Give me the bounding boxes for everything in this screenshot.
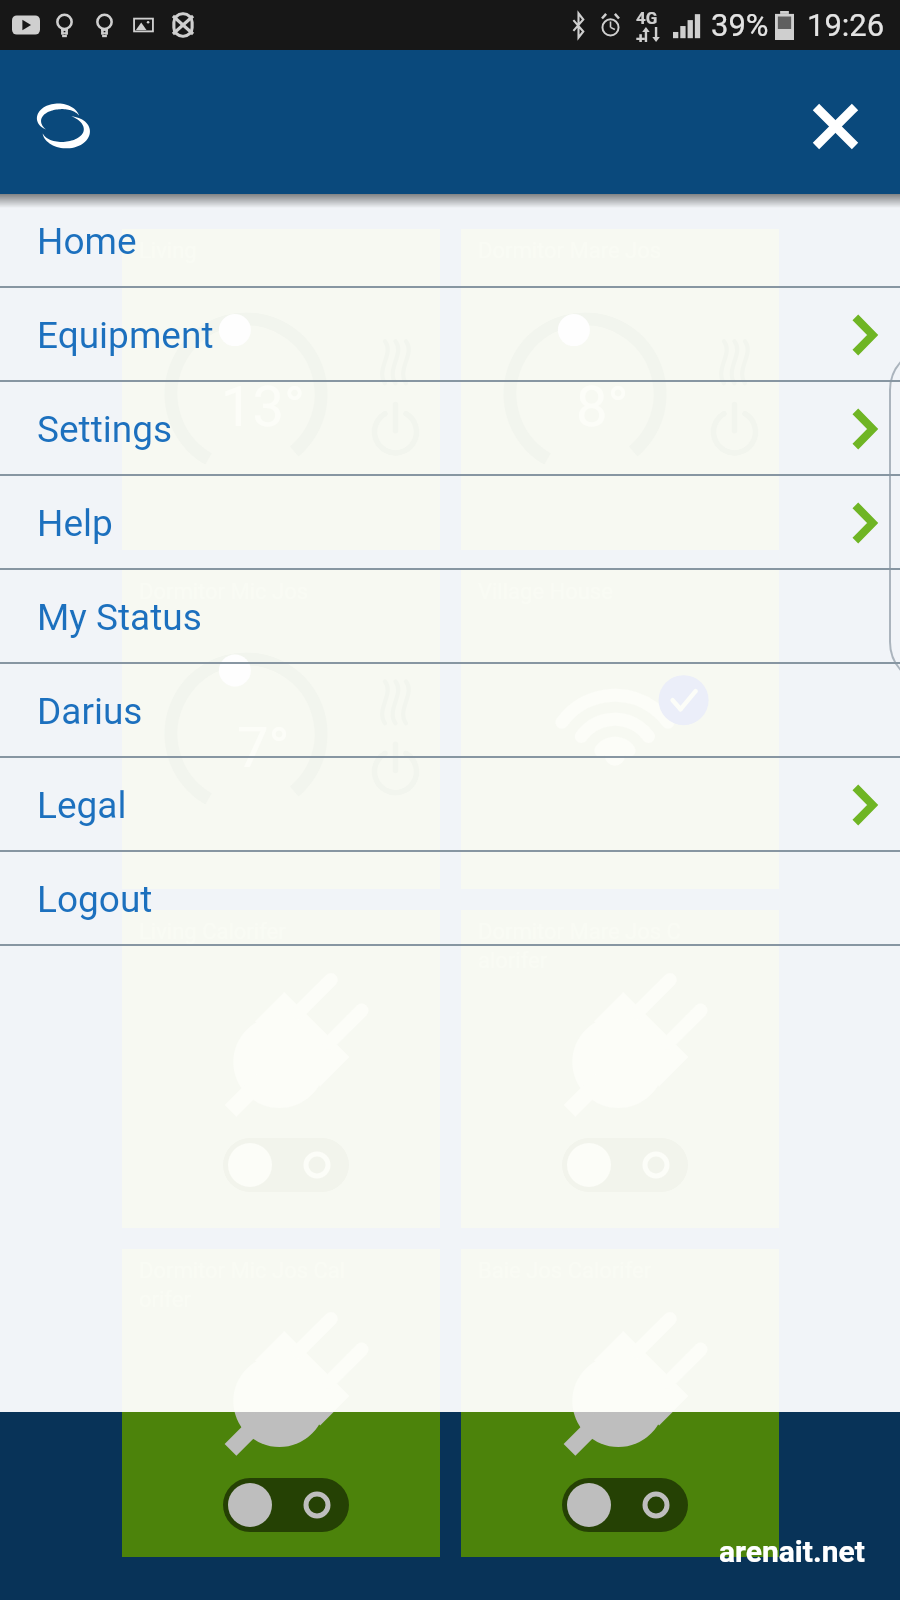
button[interactable]: Toggle (562, 1478, 688, 1532)
button[interactable]: Darius (0, 664, 900, 758)
staticText: Living Calorifer (139, 919, 286, 945)
button[interactable]: Toggle (223, 1138, 349, 1192)
staticText: arenait.net (719, 1534, 865, 1569)
button[interactable]: Dormitor Mic Jos Cal orifer (122, 1249, 440, 1567)
staticText: Darius (37, 690, 143, 733)
staticText: 7° (237, 715, 290, 781)
button[interactable]: Dormitor Mic Jos (122, 570, 440, 889)
button[interactable]: Calorifer (461, 1412, 779, 1557)
button[interactable]: Toggle (562, 1477, 688, 1531)
button[interactable]: Toggle (223, 1478, 349, 1532)
staticText: Dormitor Mare Jos C alorifer (478, 919, 681, 973)
button[interactable]: Legal (0, 758, 900, 852)
button[interactable]: Home (0, 194, 900, 288)
staticText: Logout (37, 878, 153, 921)
staticText: 39% (711, 7, 769, 43)
button[interactable]: Calorifer (122, 1412, 440, 1557)
button[interactable]: Equipment (0, 288, 900, 382)
button[interactable]: Toggle (223, 1477, 349, 1531)
button[interactable]: Baie Jos Calorifer (461, 1249, 779, 1567)
button[interactable]: Help (0, 476, 900, 570)
button[interactable]: Dormitor Mare Jos (461, 229, 779, 550)
staticText: Settings (37, 408, 173, 451)
staticText: My Status (37, 596, 202, 639)
staticText: 13° (221, 374, 305, 440)
button[interactable]: Living (122, 229, 440, 550)
staticText: 8° (576, 374, 629, 440)
staticText: Home (37, 220, 137, 263)
button[interactable]: Logout (0, 852, 900, 946)
button[interactable]: Settings (0, 382, 900, 476)
button[interactable]: Living Calorifer (122, 910, 440, 1228)
staticText: Equipment (37, 314, 214, 357)
button[interactable]: Close (795, 86, 875, 166)
staticText: Legal (37, 784, 127, 827)
staticText: 4G+ (636, 8, 665, 42)
staticText: Help (37, 502, 113, 545)
button[interactable]: Dormitor Mare Jos C alorifer (461, 910, 779, 1228)
button[interactable]: My Status (0, 570, 900, 664)
button[interactable]: Village House (461, 570, 779, 889)
button[interactable]: Toggle (562, 1138, 688, 1192)
other: Logo (31, 100, 93, 149)
staticText: 19:26 (807, 7, 885, 43)
